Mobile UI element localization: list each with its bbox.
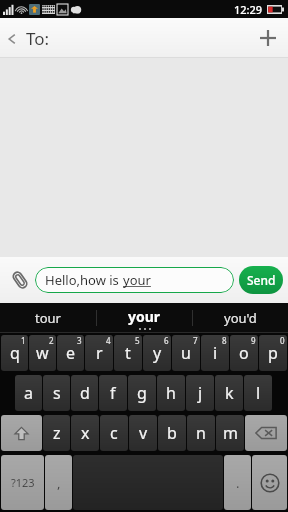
staticText: tour xyxy=(35,309,61,327)
staticText: l xyxy=(256,382,261,404)
button[interactable]: Space xyxy=(73,455,223,510)
button[interactable]: n xyxy=(187,415,215,451)
staticText: 4 xyxy=(106,335,111,346)
other: Back xyxy=(8,32,16,46)
staticText: o xyxy=(239,342,249,364)
button[interactable]: w xyxy=(29,335,56,371)
button[interactable]: y xyxy=(143,335,171,371)
staticText: y xyxy=(153,342,162,364)
staticText: 7 xyxy=(193,335,198,346)
button[interactable]: Send xyxy=(239,266,283,294)
staticText: h xyxy=(166,382,176,404)
staticText: z xyxy=(53,422,61,444)
button[interactable]: g xyxy=(128,375,156,411)
staticText: j xyxy=(198,382,203,404)
button[interactable]: o xyxy=(230,335,258,371)
button[interactable]: v xyxy=(129,415,157,451)
button[interactable]: z xyxy=(43,415,70,451)
staticText: x xyxy=(81,422,90,444)
button[interactable]: Add recipient xyxy=(248,18,288,58)
staticText: m xyxy=(223,422,238,444)
button[interactable]: e xyxy=(57,335,84,371)
button[interactable]: Back xyxy=(0,21,58,56)
button[interactable]: r xyxy=(85,335,113,371)
staticText: To: xyxy=(26,27,50,50)
staticText: t xyxy=(125,342,131,364)
staticText: r xyxy=(96,342,103,364)
button[interactable]: Shift xyxy=(1,415,42,451)
staticText: you'd xyxy=(224,309,257,327)
staticText: e xyxy=(66,342,76,364)
staticText: d xyxy=(80,382,90,404)
staticText: 9 xyxy=(251,335,256,346)
button[interactable]: m xyxy=(216,415,244,451)
button[interactable]: q xyxy=(1,335,28,371)
staticText: n xyxy=(196,422,206,444)
button[interactable]: u xyxy=(172,335,200,371)
staticText: 3 xyxy=(77,335,82,346)
staticText: Send xyxy=(247,272,276,288)
staticText: g xyxy=(137,382,147,404)
button[interactable]: Emoji xyxy=(252,455,287,510)
staticText: s xyxy=(53,382,61,404)
button[interactable]: x xyxy=(71,415,99,451)
button[interactable]: tour xyxy=(0,303,96,333)
staticText: your xyxy=(128,307,161,326)
staticText: 5 xyxy=(135,335,140,346)
staticText: b xyxy=(167,422,177,444)
button[interactable]: a xyxy=(15,375,42,411)
staticText: i xyxy=(213,342,218,364)
button[interactable]: , xyxy=(45,455,72,510)
staticText: c xyxy=(110,422,118,444)
staticText: . xyxy=(236,474,240,492)
button[interactable]: p xyxy=(259,335,287,371)
staticText: , xyxy=(57,474,61,492)
button[interactable]: your xyxy=(128,307,161,326)
button[interactable]: f xyxy=(99,375,127,411)
staticText: Hello,how is xyxy=(45,271,123,289)
button[interactable]: i xyxy=(201,335,229,371)
staticText: a xyxy=(24,382,33,404)
button[interactable]: d xyxy=(71,375,98,411)
staticText: q xyxy=(10,342,20,364)
staticText: v xyxy=(139,422,148,444)
button[interactable]: . xyxy=(224,455,251,510)
staticText: 0 xyxy=(280,335,285,346)
button[interactable]: k xyxy=(215,375,243,411)
button[interactable]: Attach xyxy=(5,265,35,295)
staticText: 6 xyxy=(164,335,169,346)
button[interactable]: Backspace xyxy=(245,415,287,451)
button[interactable]: t xyxy=(114,335,142,371)
button[interactable]: s xyxy=(43,375,70,411)
button[interactable]: j xyxy=(186,375,214,411)
staticText: p xyxy=(268,342,278,364)
staticText: 1 xyxy=(21,335,26,346)
button[interactable]: Hello,how is xyxy=(35,267,234,293)
staticText: u xyxy=(181,342,191,364)
staticText: f xyxy=(110,382,116,404)
staticText: 2 xyxy=(49,335,54,346)
button[interactable]: b xyxy=(158,415,186,451)
button[interactable]: l xyxy=(244,375,272,411)
staticText: ?123 xyxy=(11,475,35,490)
button[interactable]: ?123 xyxy=(1,455,44,510)
button[interactable]: c xyxy=(100,415,128,451)
staticText: 8 xyxy=(222,335,227,346)
button[interactable]: h xyxy=(157,375,185,411)
staticText: your xyxy=(123,271,151,289)
button[interactable]: you'd xyxy=(193,303,288,333)
staticText: k xyxy=(225,382,234,404)
staticText: w xyxy=(36,342,49,364)
staticText: 12:29 xyxy=(234,2,263,17)
